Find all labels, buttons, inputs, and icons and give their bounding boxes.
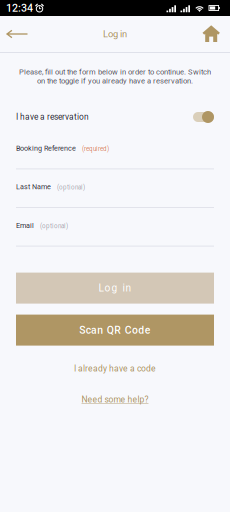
staticText: on the toggle if you already have a rese… bbox=[37, 76, 193, 85]
staticText: (required) bbox=[82, 145, 109, 152]
staticText: (optional) bbox=[57, 184, 85, 191]
button[interactable]: Log in bbox=[16, 273, 214, 304]
button[interactable]: Need some help? bbox=[16, 391, 214, 409]
staticText: I have a reservation bbox=[16, 112, 89, 122]
staticText: Log in bbox=[98, 282, 131, 294]
staticText: Please, fill out the form below in order… bbox=[19, 67, 211, 76]
button[interactable]: I already have a code bbox=[16, 360, 214, 378]
button[interactable]: Back bbox=[0, 16, 33, 52]
staticText: Last Name bbox=[16, 183, 51, 191]
staticText: Scan QR Code bbox=[79, 324, 151, 336]
staticText: Booking Reference bbox=[16, 144, 76, 152]
staticText: 12:34 bbox=[6, 2, 33, 14]
button[interactable]: I have a reservation bbox=[16, 108, 214, 126]
staticText: Need some help? bbox=[81, 395, 148, 405]
button[interactable]: Home bbox=[193, 16, 230, 52]
staticText: Log in bbox=[103, 28, 127, 39]
button[interactable]: Scan QR Code bbox=[16, 315, 214, 346]
staticText: I already have a code bbox=[74, 364, 156, 374]
staticText: (optional) bbox=[40, 222, 68, 230]
staticText: Email bbox=[16, 221, 34, 230]
